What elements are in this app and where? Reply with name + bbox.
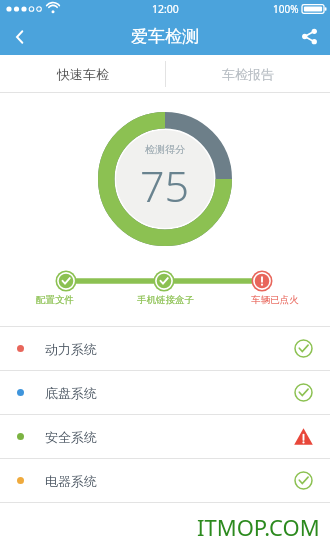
staticText: 电器系统 — [45, 473, 97, 489]
staticText: 车检报告 — [222, 66, 274, 82]
staticText: 100% — [273, 2, 299, 16]
button[interactable]: Share — [288, 18, 330, 55]
button[interactable]: 车检报告 — [165, 55, 330, 93]
staticText: 配置文件 — [36, 294, 74, 306]
staticText: 车辆已点火 — [251, 294, 299, 306]
staticText: 快速车检 — [57, 66, 109, 82]
button[interactable]: 快速车检 — [0, 55, 165, 93]
staticText: 手机链接盒子 — [137, 294, 194, 306]
staticText: 爱车检测 — [131, 26, 199, 47]
staticText: 安全系统 — [45, 429, 97, 445]
staticText: 底盘系统 — [45, 385, 97, 401]
button[interactable]: 底盘系统 — [0, 371, 330, 414]
button[interactable]: 动力系统 — [0, 327, 330, 370]
staticText: 75 — [140, 156, 190, 215]
button[interactable]: Back — [0, 18, 40, 55]
staticText: 检测得分 — [145, 143, 185, 156]
staticText: ITMOP.COM — [197, 512, 320, 542]
staticText: 12:00 — [152, 2, 179, 16]
staticText: 动力系统 — [45, 341, 97, 357]
button[interactable]: 电器系统 — [0, 459, 330, 502]
button[interactable]: 安全系统 — [0, 415, 330, 458]
